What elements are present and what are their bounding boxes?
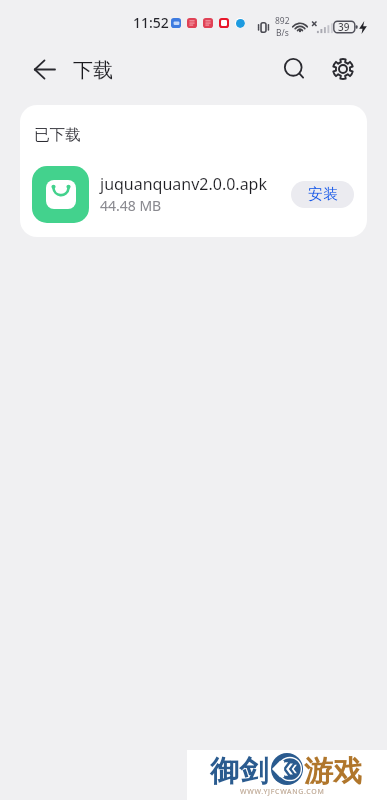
staticText: WWW.YJFCWANG.COM: [240, 787, 325, 797]
staticText: 安装: [308, 185, 338, 204]
staticText: 39: [338, 20, 350, 34]
staticText: 44.48 MB: [100, 196, 162, 215]
staticText: B/s: [276, 27, 289, 39]
staticText: 下载: [73, 58, 113, 83]
staticText: 11:52: [133, 13, 169, 32]
button[interactable]: Back: [22, 47, 66, 91]
staticText: 御剑: [210, 753, 268, 790]
staticText: 游戏: [304, 753, 362, 790]
button[interactable]: Settings: [321, 47, 365, 91]
staticText: 892: [275, 15, 290, 27]
staticText: juquanquanv2.0.0.apk: [100, 173, 268, 195]
button[interactable]: Search: [271, 47, 315, 91]
button[interactable]: 安装: [291, 181, 354, 208]
button[interactable]: juquanquanv2.0.0.apk: [20, 160, 367, 228]
staticText: 已下载: [34, 125, 81, 145]
